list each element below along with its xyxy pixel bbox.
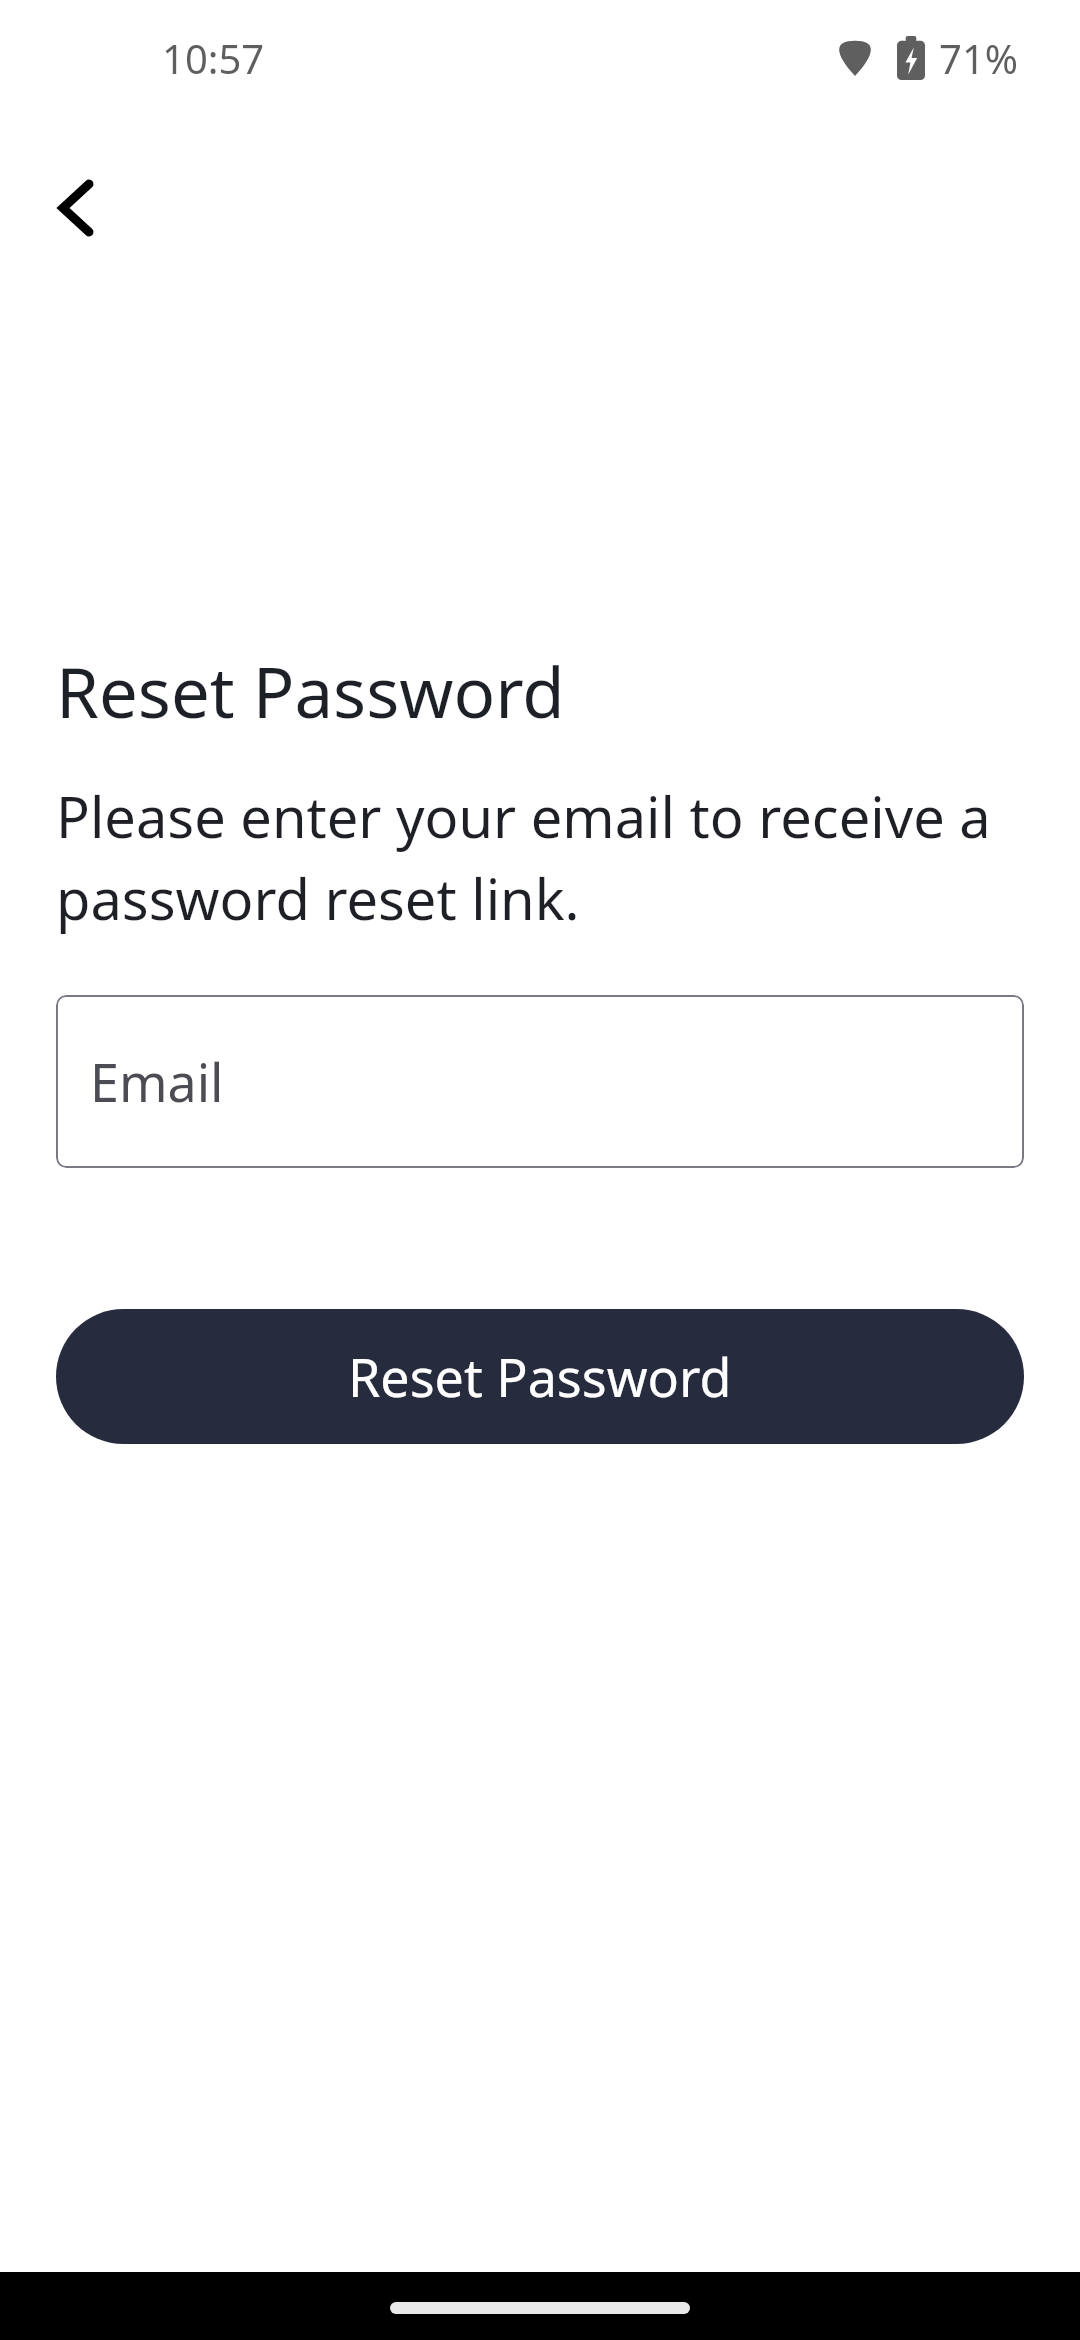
staticText: Reset Password	[348, 1341, 732, 1412]
staticText: Email	[90, 1046, 224, 1117]
staticText: 10:57	[162, 31, 265, 85]
button[interactable]: Reset Password	[56, 1309, 1024, 1444]
button[interactable]: Email	[56, 995, 1024, 1168]
staticText: 71%	[939, 31, 1018, 85]
staticText: Please enter your email to receive a pas…	[56, 778, 991, 937]
button[interactable]: Back	[28, 160, 124, 256]
staticText: Reset Password	[56, 644, 565, 738]
